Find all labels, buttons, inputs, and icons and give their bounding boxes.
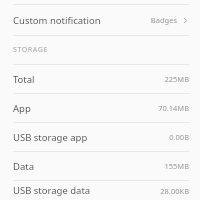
staticText: USB storage app <box>13 131 88 144</box>
staticText: Badges <box>150 15 177 25</box>
staticText: 70.14MB <box>158 103 189 113</box>
staticText: Data <box>13 160 35 173</box>
button[interactable]: Data <box>0 152 200 180</box>
button[interactable]: Custom notification <box>0 5 200 35</box>
button[interactable]: App <box>0 94 200 122</box>
button[interactable]: USB storage app <box>0 123 200 151</box>
staticText: Custom notification <box>13 14 101 27</box>
button[interactable]: Total <box>0 65 200 93</box>
staticText: App <box>13 102 31 115</box>
staticText: 155MB <box>164 161 189 171</box>
staticText: USB storage data <box>13 184 91 197</box>
staticText: 225MB <box>164 74 189 84</box>
staticText: STORAGE <box>13 45 48 55</box>
button[interactable]: USB storage data <box>0 181 200 200</box>
staticText: Total <box>13 73 35 86</box>
staticText: 0.00B <box>169 132 189 142</box>
staticText: 28.00KB <box>160 186 189 196</box>
